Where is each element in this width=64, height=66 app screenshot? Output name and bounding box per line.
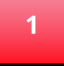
staticText: 1: [25, 7, 39, 41]
